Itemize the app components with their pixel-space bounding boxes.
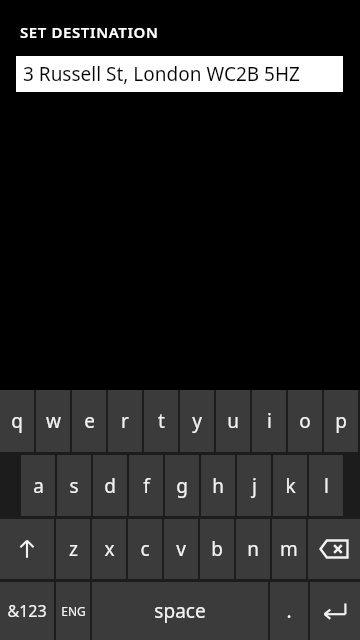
button[interactable]: 3 Russell St, London WC2B 5HZ: [16, 56, 343, 92]
button[interactable]: Shift: [0, 519, 54, 579]
button[interactable]: q: [0, 390, 34, 452]
button[interactable]: s: [57, 455, 91, 516]
staticText: s: [69, 473, 79, 499]
staticText: ENG: [61, 603, 86, 619]
button[interactable]: d: [93, 455, 127, 516]
staticText: SET DESTINATION: [20, 22, 159, 42]
button[interactable]: j: [237, 455, 271, 516]
button[interactable]: w: [36, 390, 70, 452]
staticText: n: [247, 536, 259, 562]
button[interactable]: l: [309, 455, 343, 516]
button[interactable]: u: [216, 390, 250, 452]
staticText: .: [286, 598, 292, 624]
staticText: w: [46, 408, 61, 434]
button[interactable]: i: [252, 390, 286, 452]
button[interactable]: t: [144, 390, 178, 452]
button[interactable]: k: [273, 455, 307, 516]
button[interactable]: ENG: [56, 582, 90, 640]
staticText: t: [158, 408, 165, 434]
button[interactable]: b: [200, 519, 234, 579]
button[interactable]: &123: [0, 582, 54, 640]
staticText: x: [104, 536, 115, 562]
staticText: &123: [7, 600, 47, 622]
button[interactable]: r: [108, 390, 142, 452]
button[interactable]: v: [164, 519, 198, 579]
button[interactable]: p: [324, 390, 358, 452]
staticText: q: [11, 408, 23, 434]
staticText: r: [121, 408, 129, 434]
staticText: m: [280, 536, 298, 562]
staticText: d: [104, 473, 116, 499]
button[interactable]: x: [92, 519, 126, 579]
staticText: o: [299, 408, 311, 434]
button[interactable]: y: [180, 390, 214, 452]
staticText: j: [252, 473, 257, 499]
button[interactable]: m: [272, 519, 306, 579]
staticText: c: [140, 536, 150, 562]
staticText: k: [285, 473, 296, 499]
staticText: 3 Russell St, London WC2B 5HZ: [23, 61, 300, 87]
staticText: y: [192, 408, 202, 434]
button[interactable]: o: [288, 390, 322, 452]
button[interactable]: g: [165, 455, 199, 516]
button[interactable]: e: [72, 390, 106, 452]
staticText: e: [84, 408, 95, 434]
button[interactable]: space: [92, 582, 268, 640]
button[interactable]: Backspace: [308, 519, 360, 579]
staticText: b: [211, 536, 223, 562]
staticText: a: [33, 473, 44, 499]
staticText: space: [154, 598, 206, 624]
button[interactable]: h: [201, 455, 235, 516]
staticText: g: [176, 473, 188, 499]
button[interactable]: .: [270, 582, 308, 640]
staticText: z: [69, 536, 78, 562]
staticText: h: [212, 473, 224, 499]
staticText: p: [335, 408, 347, 434]
button[interactable]: c: [128, 519, 162, 579]
staticText: u: [227, 408, 239, 434]
button[interactable]: n: [236, 519, 270, 579]
staticText: l: [324, 473, 329, 499]
button[interactable]: z: [56, 519, 90, 579]
button[interactable]: f: [129, 455, 163, 516]
button[interactable]: a: [21, 455, 55, 516]
staticText: v: [176, 536, 186, 562]
staticText: f: [143, 473, 150, 499]
staticText: i: [267, 408, 272, 434]
button[interactable]: Enter: [310, 582, 360, 640]
